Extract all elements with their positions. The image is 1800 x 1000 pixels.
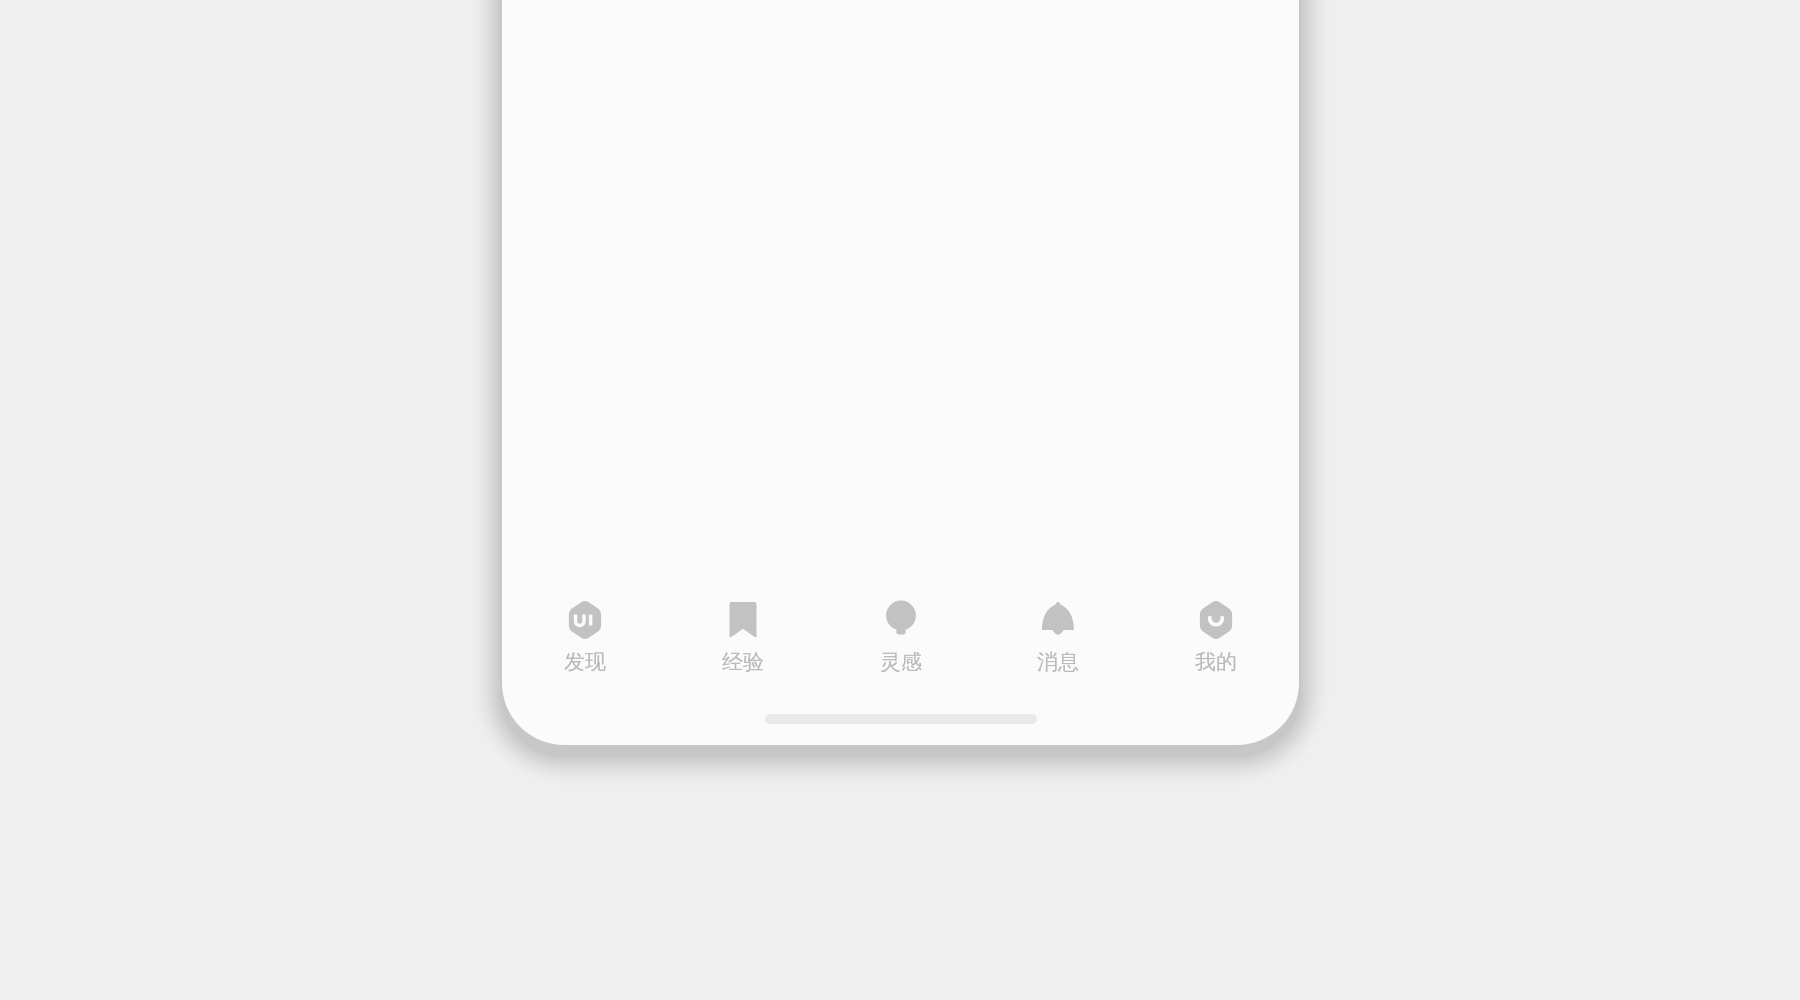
button[interactable]: 发现 <box>510 596 660 675</box>
staticText: 消息 <box>1037 649 1079 675</box>
button[interactable]: 灵感 <box>826 596 976 675</box>
staticText: 我的 <box>1195 649 1237 675</box>
staticText: 发现 <box>564 649 606 675</box>
staticText: 灵感 <box>880 649 922 675</box>
button[interactable]: 我的 <box>1141 596 1291 675</box>
button[interactable]: 消息 <box>983 596 1133 675</box>
button[interactable]: 经验 <box>668 596 818 675</box>
staticText: 经验 <box>722 649 764 675</box>
